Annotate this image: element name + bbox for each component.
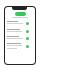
other: Included xyxy=(26,30,29,33)
button[interactable]: Included xyxy=(5,28,35,35)
button[interactable]: Included xyxy=(5,42,35,51)
button[interactable]: Included xyxy=(5,35,35,42)
other: Included xyxy=(26,45,29,48)
button[interactable]: Included xyxy=(5,20,35,27)
button[interactable] xyxy=(15,12,26,16)
other: Included xyxy=(26,22,29,25)
other: Included xyxy=(26,37,29,40)
